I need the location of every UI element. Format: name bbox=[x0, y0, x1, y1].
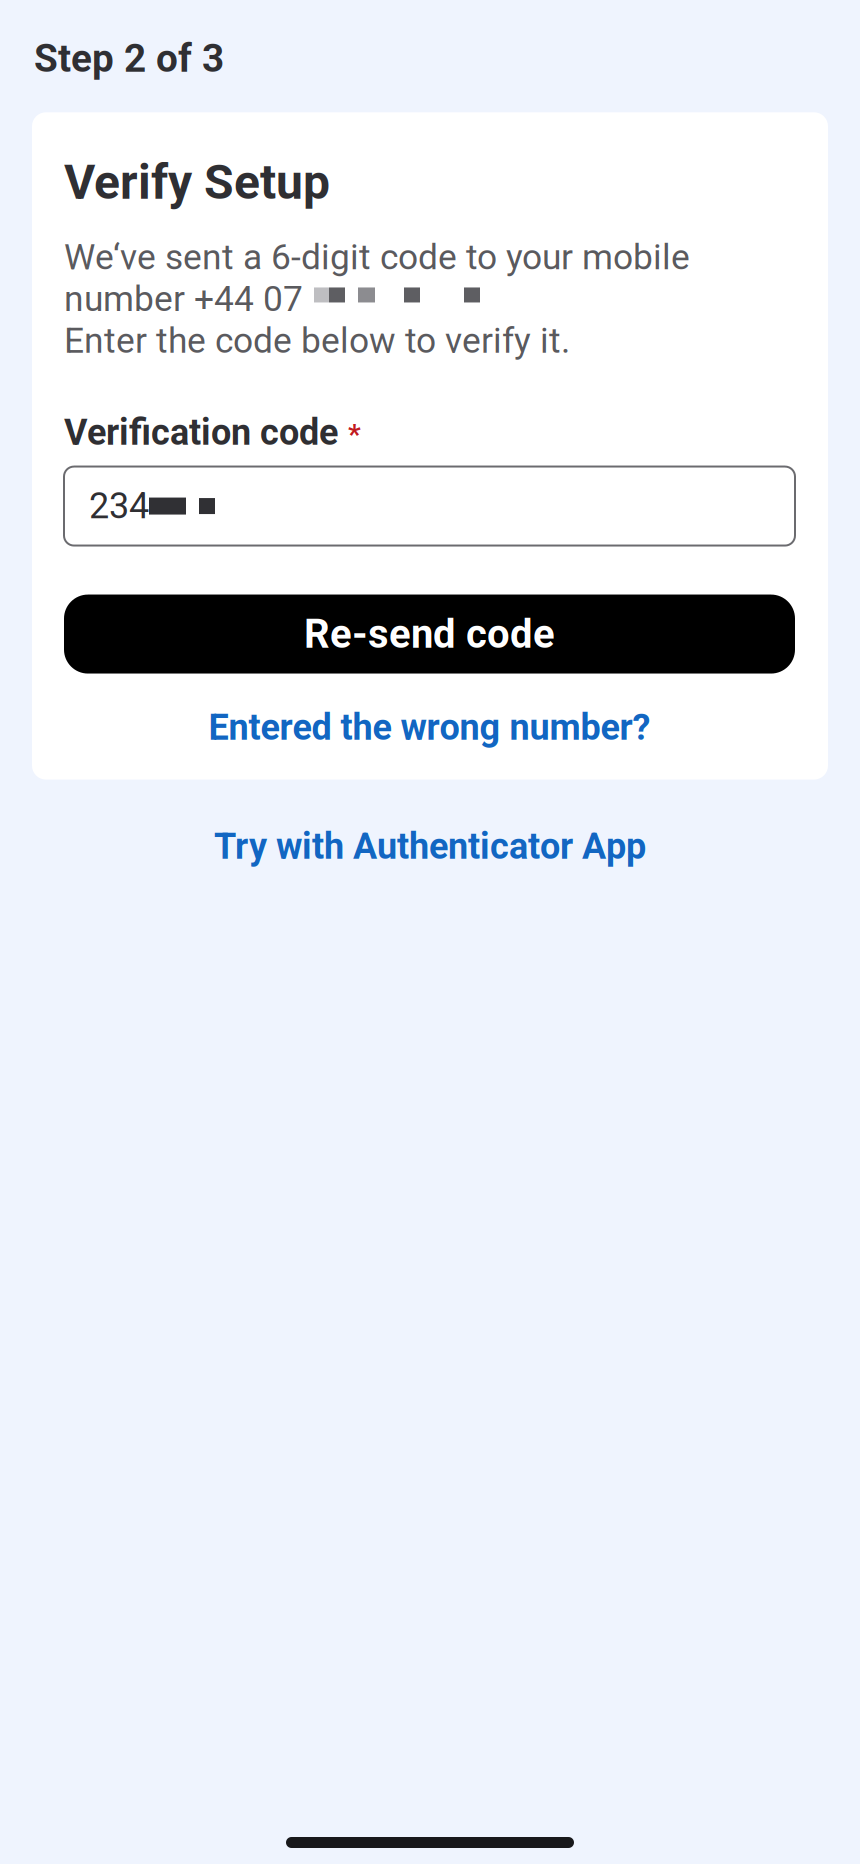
staticText: Step 2 of 3 bbox=[34, 36, 224, 81]
button[interactable]: Re-send code bbox=[64, 595, 795, 674]
button[interactable]: Try with Authenticator App bbox=[0, 819, 860, 875]
staticText: Verification code bbox=[64, 411, 338, 454]
staticText: Entered the wrong number? bbox=[208, 706, 650, 749]
staticText: number +44 07 bbox=[64, 278, 303, 320]
staticText: Re-send code bbox=[304, 611, 555, 657]
staticText: * bbox=[348, 418, 361, 451]
button[interactable]: Verification code bbox=[64, 467, 795, 546]
button[interactable]: Entered the wrong number? bbox=[64, 698, 795, 758]
staticText: Enter the code below to verify it. bbox=[64, 320, 570, 361]
staticText: We‘ve sent a 6-digit code to your mobile bbox=[64, 237, 690, 278]
staticText: Verify Setup bbox=[64, 154, 330, 210]
staticText: 234 bbox=[89, 485, 149, 527]
staticText: Try with Authenticator App bbox=[214, 825, 646, 868]
